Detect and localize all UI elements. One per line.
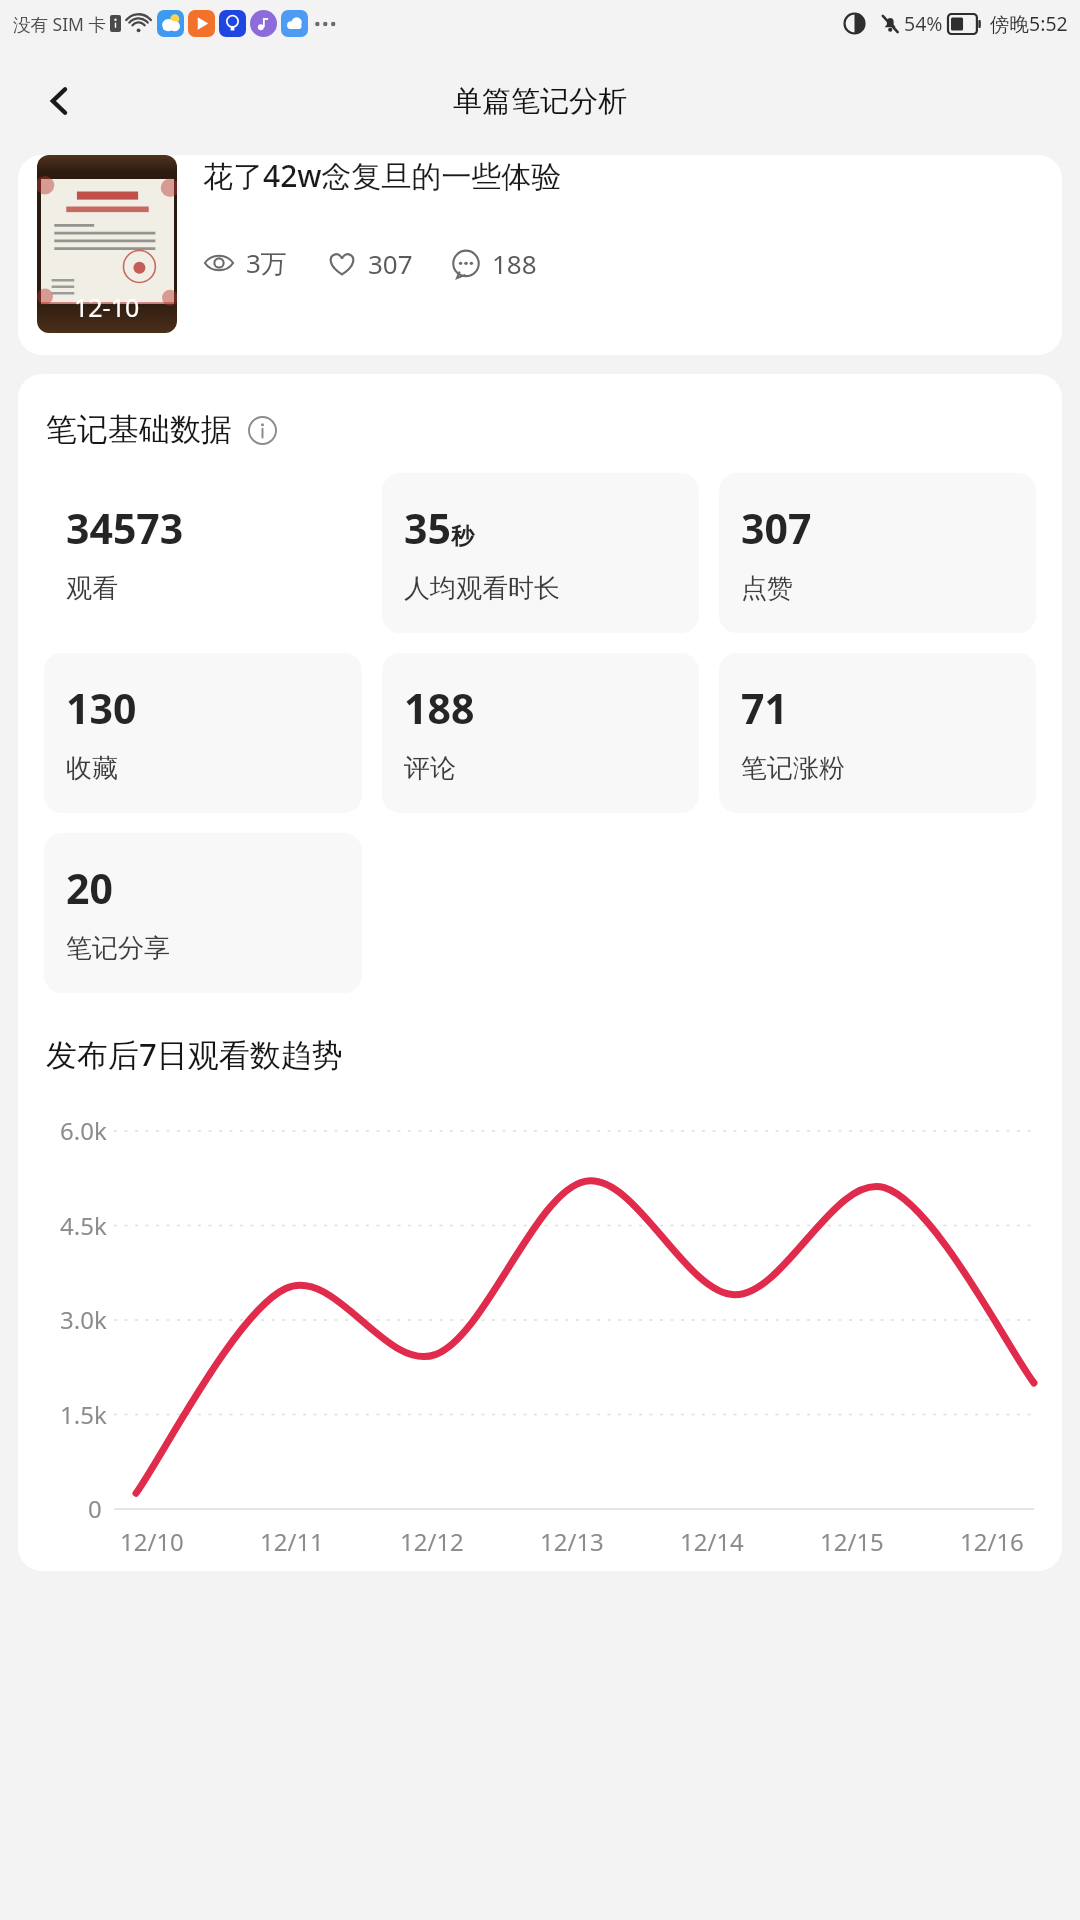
staticText: 12/13 <box>540 1525 604 1558</box>
button[interactable]: 307 <box>719 473 1036 633</box>
staticText: 12/15 <box>820 1525 884 1558</box>
staticText: 评论 <box>404 752 456 785</box>
staticText: 54% <box>904 10 943 37</box>
staticText: 傍晚5:52 <box>990 10 1068 37</box>
staticText: 笔记基础数据 <box>46 410 232 449</box>
staticText: 12/10 <box>120 1525 184 1558</box>
staticText: 秒 <box>451 522 474 551</box>
staticText: 笔记涨粉 <box>741 752 845 785</box>
button[interactable]: 130 <box>44 653 362 813</box>
staticText: 发布后7日观看数趋势 <box>46 1033 343 1075</box>
staticText: 12-10 <box>74 290 140 324</box>
button[interactable]: 188 <box>382 653 699 813</box>
button[interactable]: 12-10 <box>18 155 1062 355</box>
button[interactable]: 71 <box>719 653 1036 813</box>
staticText: 12/16 <box>960 1525 1024 1558</box>
button[interactable]: 返回 <box>26 67 94 135</box>
staticText: 收藏 <box>66 752 118 785</box>
staticText: 4.5k <box>60 1209 107 1242</box>
staticText: 307 <box>741 500 812 556</box>
staticText: 12/11 <box>260 1525 324 1558</box>
staticText: 1.5k <box>60 1398 107 1431</box>
button[interactable]: 34573 <box>44 473 362 633</box>
staticText: 人均观看时长 <box>404 572 560 605</box>
staticText: 34573 <box>66 500 184 556</box>
staticText: 188 <box>492 246 537 281</box>
staticText: 0 <box>88 1492 102 1525</box>
staticText: 12/14 <box>680 1525 744 1558</box>
staticText: 3.0k <box>60 1303 107 1336</box>
staticText: 单篇笔记分析 <box>453 83 627 120</box>
button[interactable]: 数据说明 <box>244 412 280 448</box>
staticText: 没有 SIM 卡 <box>13 12 107 36</box>
staticText: 观看 <box>66 572 118 605</box>
staticText: 花了42w念复旦的一些体验 <box>203 155 562 196</box>
staticText: 3万 <box>246 245 287 281</box>
staticText: 笔记分享 <box>66 932 170 965</box>
staticText: 20 <box>66 860 113 916</box>
staticText: 188 <box>404 680 475 736</box>
staticText: 35 <box>404 500 451 556</box>
staticText: 6.0k <box>60 1114 107 1147</box>
staticText: 12/12 <box>400 1525 464 1558</box>
staticText: 130 <box>66 680 137 736</box>
button[interactable]: 20 <box>44 833 362 993</box>
staticText: 71 <box>741 680 788 736</box>
button[interactable]: 35 <box>382 473 699 633</box>
staticText: 307 <box>368 246 413 281</box>
staticText: 点赞 <box>741 572 793 605</box>
